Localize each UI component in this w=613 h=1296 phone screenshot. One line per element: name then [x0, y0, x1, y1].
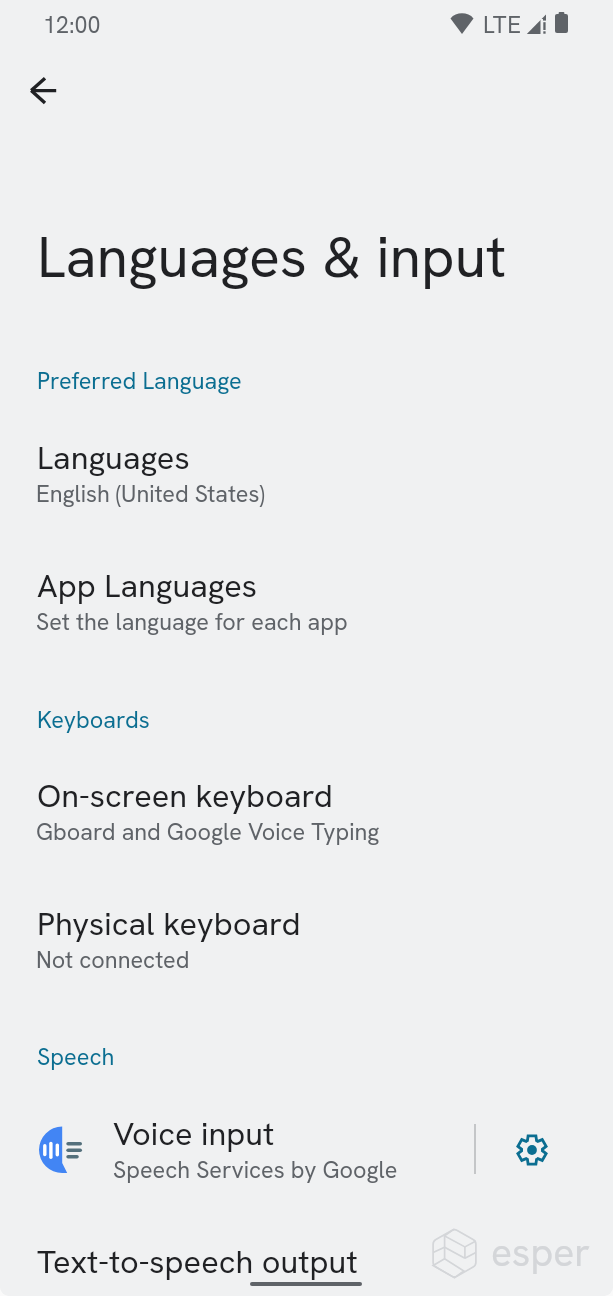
button[interactable]: Languages [0, 432, 613, 532]
staticText: Keyboards [37, 704, 150, 735]
staticText: App Languages [37, 564, 257, 606]
button[interactable] [0, 1108, 474, 1208]
staticText: Not connected [36, 945, 190, 975]
staticText: Gboard and Google Voice Typing [36, 817, 380, 847]
staticText: Languages [37, 436, 190, 478]
button[interactable]: Voice input settings [477, 1108, 613, 1208]
staticText: Preferred Language [37, 365, 242, 396]
button[interactable]: Physical keyboard [0, 898, 613, 998]
staticText: Voice input [113, 1112, 275, 1154]
button[interactable]: Speech [0, 1026, 613, 1074]
staticText: LTE [483, 9, 522, 40]
button[interactable]: Keyboards [0, 689, 613, 737]
staticText: English (United States) [36, 479, 265, 509]
button[interactable]: App Languages [0, 560, 613, 660]
button[interactable]: Navigate up [19, 67, 67, 115]
button[interactable]: On-screen keyboard [0, 770, 613, 870]
staticText: Set the language for each app [36, 607, 348, 637]
staticText: Languages & input [37, 219, 507, 294]
button[interactable]: Preferred Language [0, 350, 613, 398]
staticText: esper [491, 1227, 591, 1278]
staticText: On-screen keyboard [37, 774, 333, 816]
staticText: Speech Services by Google [113, 1155, 398, 1185]
staticText: Text-to-speech output [37, 1240, 358, 1282]
staticText: 12:00 [43, 10, 101, 40]
staticText: Speech [37, 1041, 115, 1072]
button[interactable]: Text-to-speech output [0, 1236, 613, 1296]
staticText: Physical keyboard [37, 902, 301, 944]
